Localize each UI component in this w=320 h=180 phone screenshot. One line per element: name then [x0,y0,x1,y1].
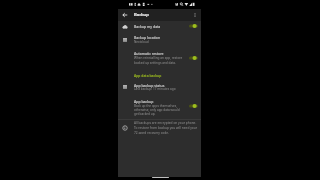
staticText: Backup my data [134,24,161,29]
button[interactable] [118,80,201,94]
staticText: Automatic restore [134,51,164,56]
staticText: Backup location [134,35,161,40]
staticText: Back up the apps themselves, otherwise, … [134,104,185,116]
button[interactable]: More options [189,9,201,21]
staticText: Last backup: 17 minutes ago [134,87,176,91]
button[interactable]: Toggle setting [189,54,200,62]
staticText: Backup [134,12,149,18]
button[interactable] [131,71,165,79]
button[interactable]: Toggle setting [189,22,200,30]
button[interactable] [118,96,201,118]
button[interactable] [118,22,201,32]
button[interactable]: Toggle setting [189,102,200,110]
staticText: App backup [134,99,154,104]
staticText: App data backup [134,73,162,78]
staticText: When reinstalling an app, restore backed… [134,56,185,64]
staticText: App backup status [134,83,165,88]
staticText: All backups are encrypted on your phone.… [134,121,199,134]
button[interactable]: Back [119,9,131,21]
button[interactable] [118,32,201,46]
button[interactable] [118,48,201,67]
staticText: Nextcloud [134,40,149,44]
